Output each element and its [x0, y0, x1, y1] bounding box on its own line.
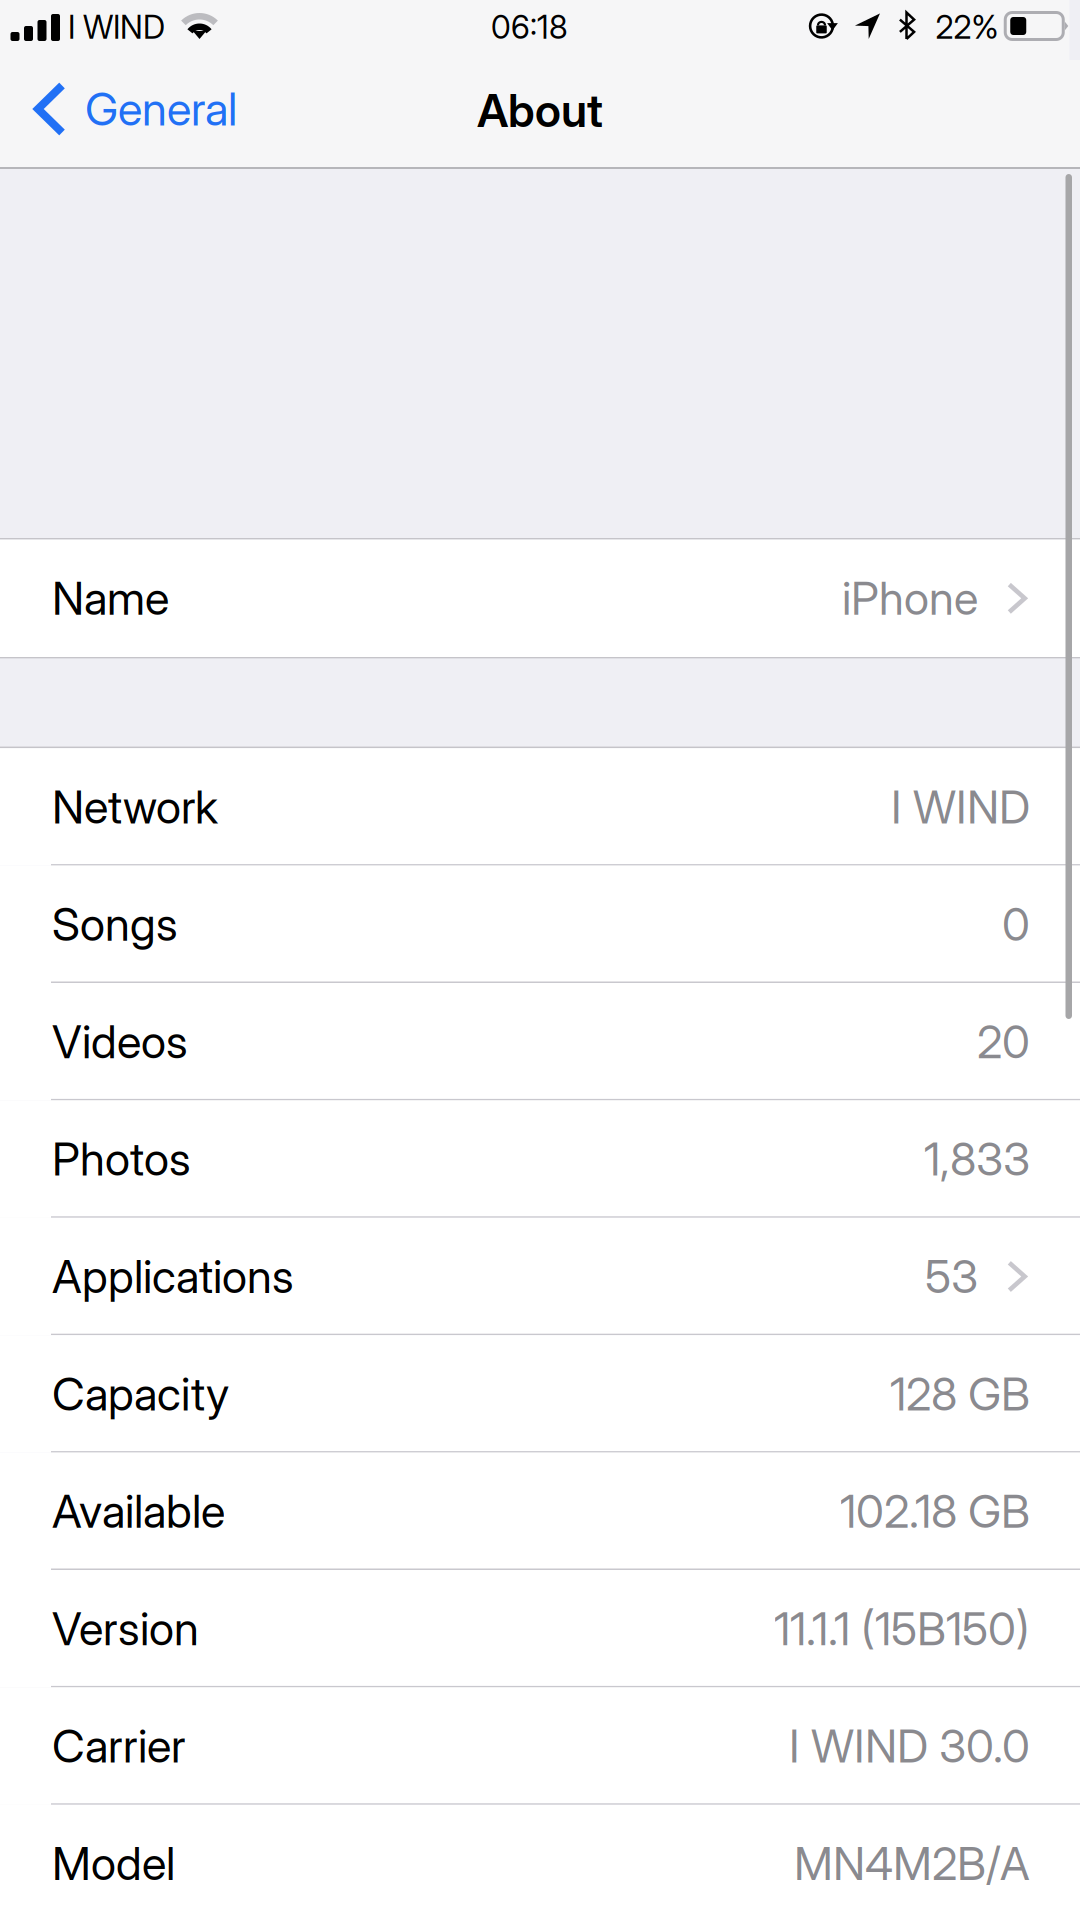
button[interactable]: Videos	[0, 983, 1080, 1100]
button[interactable]: Carrier	[0, 1687, 1080, 1805]
staticText: Carrier	[52, 1719, 186, 1774]
staticText: General	[85, 82, 237, 136]
staticText: I WIND 30.0	[789, 1719, 1030, 1774]
button[interactable]: Applications	[0, 1218, 1080, 1335]
button[interactable]: Version	[0, 1570, 1080, 1687]
button[interactable]: Songs	[0, 866, 1080, 983]
staticText: Videos	[52, 1014, 188, 1069]
button[interactable]: Available	[0, 1453, 1080, 1570]
staticText: Songs	[52, 897, 178, 952]
staticText: 06:18	[491, 8, 568, 46]
staticText: I WIND	[68, 8, 165, 46]
staticText: About	[477, 83, 603, 138]
staticText: Model	[52, 1836, 175, 1891]
button[interactable]: Network	[0, 748, 1080, 866]
staticText: Network	[52, 779, 218, 834]
staticText: Applications	[52, 1249, 294, 1304]
staticText: MN4M2B/A	[794, 1836, 1030, 1891]
staticText: 128 GB	[890, 1366, 1030, 1421]
staticText: iPhone	[842, 571, 978, 626]
staticText: Capacity	[52, 1366, 229, 1421]
staticText: Version	[52, 1601, 199, 1656]
button[interactable]: Name	[0, 540, 1080, 657]
staticText: 1,833	[924, 1132, 1030, 1187]
button[interactable]: Photos	[0, 1100, 1080, 1218]
staticText: Photos	[52, 1132, 191, 1187]
button[interactable]: Model	[0, 1805, 1080, 1920]
staticText: 11.1.1 (15B150)	[774, 1601, 1030, 1656]
staticText: Available	[52, 1484, 225, 1539]
staticText: 20	[977, 1014, 1030, 1069]
staticText: 22%	[935, 8, 998, 46]
button[interactable]: Capacity	[0, 1335, 1080, 1453]
staticText: I WIND	[891, 779, 1030, 834]
staticText: 102.18 GB	[840, 1484, 1030, 1539]
staticText: 53	[925, 1249, 978, 1304]
staticText: Name	[52, 571, 169, 626]
staticText: 0	[1002, 897, 1030, 952]
button[interactable]: General	[0, 65, 257, 153]
